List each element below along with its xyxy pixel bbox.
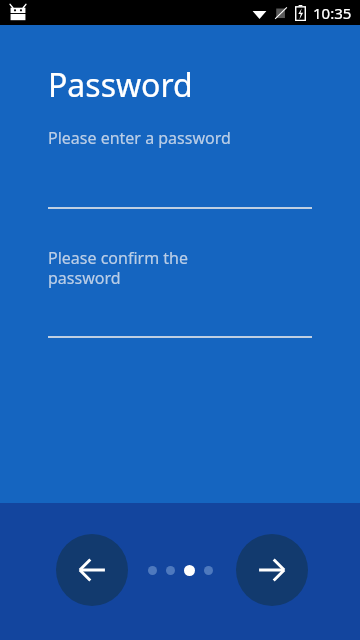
staticText: Password: [48, 63, 193, 107]
staticText: Please enter a password: [48, 127, 231, 149]
button[interactable]: Back: [56, 534, 128, 606]
button[interactable]: Next: [236, 534, 308, 606]
staticText: 10:35: [313, 3, 352, 23]
staticText: Please confirm the password: [48, 247, 238, 288]
